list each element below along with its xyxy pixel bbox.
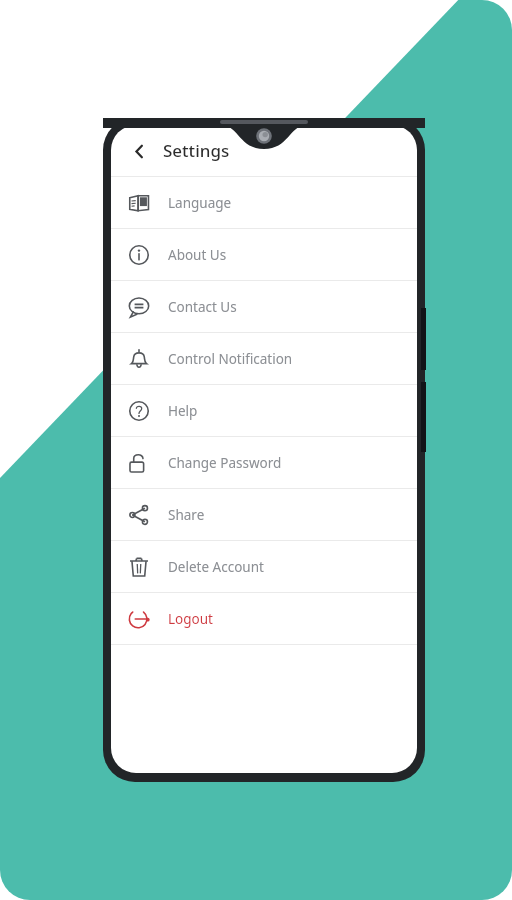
button[interactable]: Contact Us xyxy=(111,281,417,332)
staticText: About Us xyxy=(168,246,227,264)
button[interactable]: Share xyxy=(111,489,417,540)
button[interactable]: About Us xyxy=(111,229,417,280)
staticText: Contact Us xyxy=(168,298,237,316)
button[interactable]: Control Notification xyxy=(111,333,417,384)
button[interactable]: Change Password xyxy=(111,437,417,488)
button[interactable]: Logout xyxy=(111,593,417,644)
button[interactable]: Delete Account xyxy=(111,541,417,592)
staticText: Change Password xyxy=(168,454,282,472)
staticText: Delete Account xyxy=(168,558,264,576)
button[interactable]: Language xyxy=(111,177,417,228)
staticText: Settings xyxy=(163,139,230,162)
staticText: Control Notification xyxy=(168,350,293,368)
button[interactable]: Help xyxy=(111,385,417,436)
button[interactable]: Back xyxy=(122,134,156,168)
staticText: Logout xyxy=(168,610,213,628)
staticText: Share xyxy=(168,506,205,524)
staticText: Help xyxy=(168,402,198,420)
staticText: Language xyxy=(168,194,232,212)
